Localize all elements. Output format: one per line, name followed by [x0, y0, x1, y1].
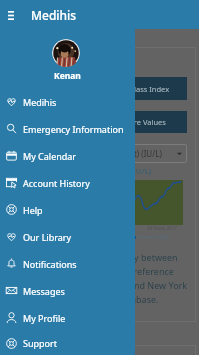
staticText: Click here to see and Compare Values — [34, 117, 166, 127]
button[interactable]: Emergency Information — [0, 115, 135, 142]
staticText: Alanine Aminotransferase (Sgpt) (IU/L) — [18, 148, 171, 159]
button[interactable]: Support — [0, 331, 135, 355]
staticText: Reference High — [137, 234, 170, 240]
staticText: Support — [23, 337, 57, 349]
button[interactable]: Messages — [0, 277, 135, 304]
button[interactable]: Medihis — [0, 88, 135, 115]
staticText: Messages — [23, 285, 65, 297]
staticText: My Profile — [23, 312, 66, 324]
button[interactable]: Open navigation drawer — [2, 6, 20, 24]
staticText: Alanine Aminotransferase (Sgpt) (IU/L) — [7, 166, 152, 176]
button[interactable]: Our Library — [0, 223, 135, 250]
staticText: Click here to calculate Body Mass Index — [31, 84, 170, 94]
button[interactable]: Alanine Aminotransferase (Sgpt) (IU/L) — [13, 144, 187, 163]
staticText: Your value differs significantly between… — [12, 251, 194, 306]
button[interactable]: Notifications — [0, 250, 135, 277]
button[interactable]: My Profile — [0, 304, 135, 331]
staticText: 24 Nisan 2017 — [147, 225, 177, 231]
staticText: Emergency Information — [23, 123, 124, 135]
staticText: Account History — [23, 177, 90, 189]
staticText: Notifications — [23, 258, 77, 270]
staticText: Medihis — [31, 7, 77, 23]
staticText: Our Library — [23, 231, 72, 243]
staticText: Kenan — [54, 70, 81, 82]
button[interactable]: Click here to see and Compare Values — [13, 111, 187, 133]
staticText: My Calendar — [23, 150, 77, 162]
staticText: Medihis — [23, 96, 57, 108]
button[interactable]: Click here to calculate Body Mass Index — [13, 77, 187, 100]
button[interactable]: Account History — [0, 169, 135, 196]
button[interactable]: Help — [0, 196, 135, 223]
button[interactable]: My Calendar — [0, 142, 135, 169]
staticText: Help — [23, 204, 43, 216]
